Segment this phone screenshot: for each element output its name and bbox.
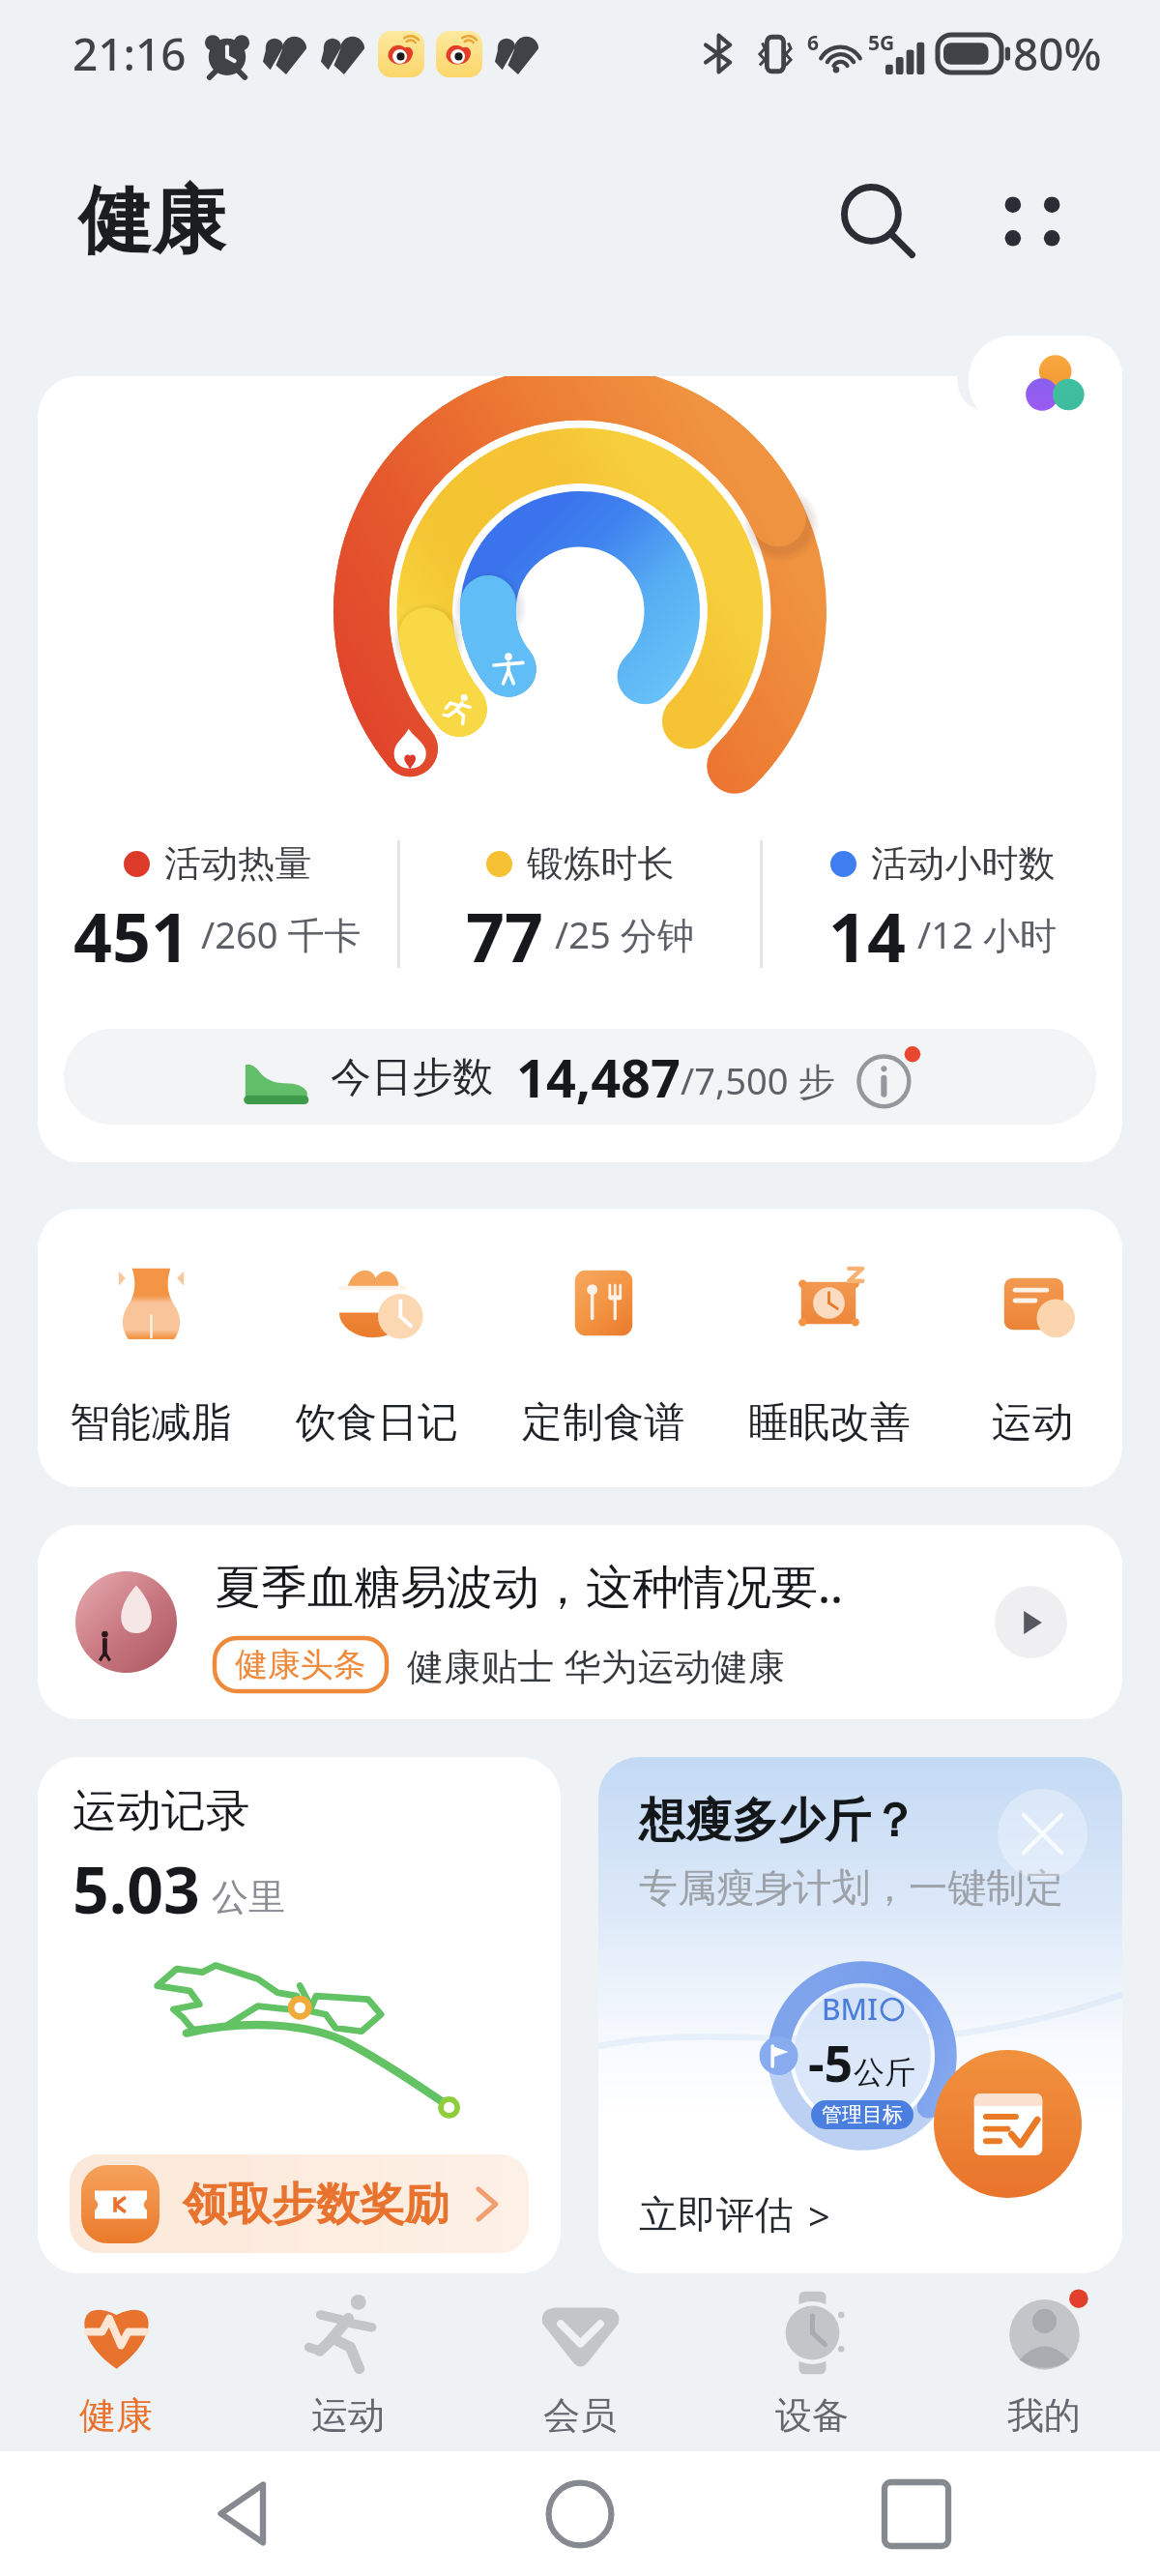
staticText: 451 <box>73 890 189 968</box>
button[interactable]: 领取步数奖励 <box>70 2154 529 2253</box>
staticText: 智能减脂 <box>70 1397 232 1449</box>
staticText: /7,500 步 <box>681 1055 835 1105</box>
staticText: 定制食谱 <box>522 1397 684 1449</box>
button[interactable]: 今日步数 <box>64 1029 1096 1125</box>
staticText: 5.03 <box>72 1845 200 1932</box>
staticText: BMI <box>822 1989 878 2029</box>
staticText: 夏季血糖易波动，这种情况要.. <box>215 1554 844 1618</box>
staticText: 77 <box>466 890 543 968</box>
button[interactable]: 运动 <box>232 2274 464 2451</box>
staticText: 运动 <box>992 1397 1073 1449</box>
staticText: 领取步数奖励 <box>183 2177 449 2233</box>
staticText: 健康贴士 华为运动健康 <box>407 1640 785 1690</box>
button[interactable]: 活动热量 <box>38 376 1122 1162</box>
button[interactable]: Profiles <box>969 336 1122 425</box>
button[interactable]: 健康 <box>0 2274 232 2451</box>
staticText: 80% <box>1013 23 1102 84</box>
staticText: 公斤 <box>854 2053 916 2092</box>
button[interactable]: 睡眠改善 <box>716 1209 942 1487</box>
staticText: 饮食日记 <box>296 1397 458 1449</box>
staticText: 专属瘦身计划，一键制定 <box>639 1864 1063 1913</box>
button[interactable]: 立即评估 <box>639 2189 830 2241</box>
staticText: /25 分钟 <box>555 909 694 959</box>
staticText: > <box>808 2189 830 2241</box>
staticText: -5 <box>808 2029 854 2097</box>
staticText: 立即评估 <box>639 2191 794 2239</box>
staticText: 设备 <box>775 2392 850 2439</box>
button[interactable]: 运动记录 <box>38 1757 561 2273</box>
button[interactable]: 会员 <box>464 2274 696 2451</box>
staticText: 睡眠改善 <box>748 1397 911 1449</box>
button[interactable]: 设备 <box>696 2274 928 2451</box>
button[interactable]: 定制食谱 <box>490 1209 716 1487</box>
button[interactable]: 智能减脂 <box>38 1209 264 1487</box>
staticText: 会员 <box>543 2392 618 2439</box>
button[interactable]: 我的 <box>928 2274 1160 2451</box>
staticText: 6 <box>807 29 820 57</box>
button[interactable]: 夏季血糖易波动，这种情况要.. <box>38 1525 1122 1719</box>
button[interactable]: Home <box>499 2451 661 2576</box>
staticText: 今日步数 <box>331 1052 493 1103</box>
button[interactable]: More options <box>957 146 1108 297</box>
button[interactable]: Play <box>995 1586 1067 1658</box>
staticText: 运动记录 <box>72 1783 250 1839</box>
staticText: /12 小时 <box>917 909 1057 959</box>
staticText: 想瘦多少斤？ <box>639 1792 917 1850</box>
button[interactable]: Create plan <box>934 2050 1082 2198</box>
button[interactable]: 运动 <box>942 1209 1122 1487</box>
staticText: 21:16 <box>72 23 187 84</box>
staticText: 14,487 <box>516 1041 681 1113</box>
staticText: 活动热量 <box>164 840 312 887</box>
button[interactable]: Close <box>998 1789 1087 1879</box>
staticText: 健康 <box>78 175 225 268</box>
button[interactable]: Back <box>162 2451 325 2576</box>
staticText: 活动小时数 <box>871 840 1056 887</box>
staticText: 健康 <box>79 2392 154 2439</box>
staticText: /260 千卡 <box>201 909 362 959</box>
staticText: 公里 <box>212 1874 286 1920</box>
button[interactable]: Search <box>803 146 954 297</box>
button[interactable]: 想瘦多少斤？ <box>598 1757 1122 2273</box>
staticText: 14 <box>828 890 906 968</box>
staticText: 管理目标 <box>822 2102 903 2127</box>
staticText: 我的 <box>1007 2392 1082 2439</box>
staticText: 5G <box>868 29 895 57</box>
button[interactable]: 饮食日记 <box>264 1209 490 1487</box>
button[interactable]: Recents <box>835 2451 998 2576</box>
staticText: 运动 <box>311 2392 386 2439</box>
staticText: 健康头条 <box>235 1644 366 1685</box>
staticText: 锻炼时长 <box>527 840 675 887</box>
